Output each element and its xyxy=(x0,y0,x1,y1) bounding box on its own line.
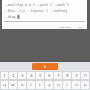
button[interactable]: 2 xyxy=(9,72,17,79)
button[interactable]: 4 xyxy=(27,72,35,79)
staticText: w xyxy=(11,82,15,88)
staticText: 3 xyxy=(21,73,24,79)
button[interactable]: q xyxy=(1,81,8,89)
button[interactable]: 1 xyxy=(1,72,8,79)
staticText: u xyxy=(57,82,60,88)
staticText: 4 xyxy=(30,73,33,79)
staticText: p xyxy=(84,82,87,88)
button[interactable]: 7 xyxy=(54,72,62,79)
button[interactable]: p xyxy=(81,81,89,89)
button[interactable]: i xyxy=(63,81,71,89)
staticText: t xyxy=(39,82,41,88)
staticText: e xyxy=(21,82,24,88)
staticText: 0 xyxy=(84,73,87,79)
staticText: 6 xyxy=(48,73,51,79)
button[interactable]: OK xyxy=(77,25,84,29)
button[interactable]: 3 xyxy=(18,72,26,79)
button[interactable]: 9 xyxy=(72,72,80,79)
button[interactable]: e xyxy=(18,81,26,89)
staticText: 8 xyxy=(66,73,69,79)
button[interactable]: u xyxy=(54,81,62,89)
button[interactable]: t xyxy=(32,63,58,70)
button[interactable]: r xyxy=(27,81,35,89)
staticText: --ding █ xyxy=(4,15,85,19)
button[interactable]: t xyxy=(36,81,44,89)
button[interactable]: 5 xyxy=(36,72,44,79)
staticText: y xyxy=(48,82,51,88)
staticText: --mod.http.k.d.t --path 3 --path 5 xyxy=(4,3,85,7)
button[interactable]: CANCEL xyxy=(58,25,73,29)
staticText: OK xyxy=(78,26,83,28)
staticText: CANCEL xyxy=(59,26,72,28)
button[interactable]: y xyxy=(45,81,53,89)
staticText: 9 xyxy=(75,73,78,79)
staticText: q xyxy=(3,82,6,88)
staticText: i xyxy=(66,82,68,88)
staticText: t xyxy=(44,64,46,69)
staticText: 7 xyxy=(57,73,60,79)
button[interactable]: o xyxy=(72,81,80,89)
button[interactable]: 8 xyxy=(63,72,71,79)
staticText: r xyxy=(30,82,32,88)
staticText: 1 xyxy=(3,73,6,79)
button[interactable]: 6 xyxy=(45,72,53,79)
staticText: 5 xyxy=(39,73,42,79)
button[interactable]: w xyxy=(9,81,17,89)
staticText: --Desc. t+1 --timeout 1 --nothing xyxy=(4,9,85,13)
staticText: 2 xyxy=(12,73,15,79)
button[interactable]: 0 xyxy=(81,72,89,79)
staticText: o xyxy=(75,82,78,88)
